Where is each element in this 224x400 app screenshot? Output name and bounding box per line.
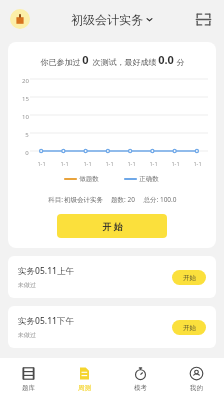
staticText: 1-1 (127, 160, 136, 167)
button[interactable]: 开始 (172, 270, 206, 285)
staticText: 0 (82, 52, 89, 67)
button[interactable]: Profile (10, 9, 30, 29)
button[interactable]: 开 始 (57, 214, 167, 238)
staticText: 正确数 (139, 175, 159, 183)
staticText: 1-1 (60, 160, 69, 167)
staticText: 你已参加过 (39, 56, 82, 67)
staticText: 周测 (78, 384, 91, 392)
staticText: 实务05.11下午 (18, 315, 74, 327)
staticText: 次测试，最好成绩 (89, 56, 158, 67)
button[interactable]: 实务05.11上午 (8, 256, 216, 298)
staticText: 1-1 (193, 160, 202, 167)
staticText: 未做过 (18, 331, 36, 339)
button[interactable]: 实务05.11下午 (8, 306, 216, 348)
staticText: 未做过 (18, 281, 36, 289)
staticText: 做题数 (79, 175, 99, 183)
button[interactable]: 题库 (0, 358, 56, 400)
staticText: 总分: 100.0 (143, 195, 177, 204)
staticText: 1-1 (83, 160, 92, 167)
staticText: 1-1 (149, 160, 158, 167)
staticText: 科目: (47, 195, 64, 204)
staticText: 题库 (22, 384, 35, 392)
staticText: 20 (22, 77, 29, 85)
staticText: 开始 (183, 274, 196, 282)
button[interactable]: 我的 (168, 358, 224, 400)
staticText: 开始 (183, 324, 196, 332)
staticText: 初级会计实务 (71, 12, 143, 27)
staticText: 1-1 (37, 160, 46, 167)
staticText: 初级会计实务 (64, 196, 103, 204)
button[interactable]: 模考 (112, 358, 168, 400)
staticText: 实务05.11上午 (18, 265, 74, 277)
staticText: 15 (22, 95, 29, 103)
staticText: 开 始 (102, 220, 123, 232)
staticText: 模考 (134, 384, 147, 392)
staticText: 0.0 (158, 52, 174, 67)
button[interactable]: Scan (192, 8, 214, 30)
staticText: 1-1 (105, 160, 114, 167)
staticText: 1-1 (171, 160, 180, 167)
staticText: 分 (174, 56, 185, 67)
staticText: 题数: 20 (111, 195, 135, 204)
button[interactable]: 开始 (172, 320, 206, 335)
staticText: 5 (25, 131, 29, 139)
staticText: 0 (25, 149, 29, 157)
staticText: 我的 (190, 384, 203, 392)
button[interactable]: 周测 (56, 358, 112, 400)
staticText: 10 (22, 113, 29, 121)
